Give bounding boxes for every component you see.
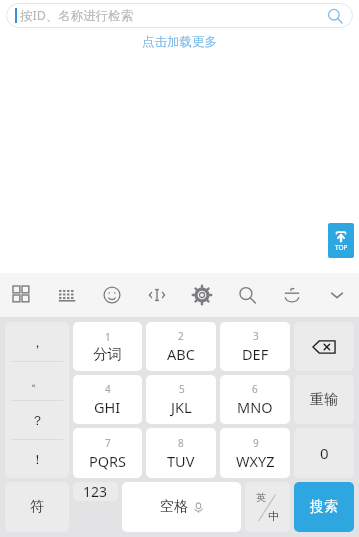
staticText: TUV bbox=[167, 451, 195, 471]
staticText: 7 bbox=[105, 436, 111, 450]
staticText: 重输 bbox=[310, 391, 338, 409]
staticText: 搜索 bbox=[310, 498, 338, 516]
button[interactable]: 3 bbox=[220, 322, 290, 371]
staticText: 123 bbox=[83, 482, 108, 501]
button[interactable]: 4 bbox=[73, 375, 142, 424]
staticText: 分词 bbox=[93, 345, 122, 363]
button[interactable]: Keyboard layouts bbox=[0, 273, 44, 317]
button[interactable]: 符 bbox=[5, 482, 69, 532]
button[interactable]: 123 bbox=[73, 482, 118, 501]
staticText: 空格 bbox=[160, 498, 188, 516]
staticText: 4 bbox=[105, 382, 111, 396]
button[interactable]: 0 bbox=[294, 428, 354, 478]
button[interactable]: Settings bbox=[179, 273, 224, 317]
button[interactable]: Search bbox=[224, 273, 269, 317]
staticText: 9 bbox=[253, 436, 259, 450]
staticText: 8 bbox=[178, 436, 184, 450]
button[interactable]: ， bbox=[5, 322, 69, 361]
button[interactable]: 9 bbox=[220, 428, 290, 478]
staticText: 中 bbox=[268, 509, 279, 523]
staticText: ！ bbox=[31, 451, 44, 467]
staticText: 2 bbox=[178, 329, 184, 343]
staticText: DEF bbox=[242, 344, 269, 364]
staticText: WXYZ bbox=[236, 451, 275, 471]
staticText: ， bbox=[31, 334, 44, 350]
staticText: 3 bbox=[253, 329, 259, 343]
staticText: 符 bbox=[30, 498, 44, 516]
button[interactable]: 2 bbox=[146, 322, 216, 371]
staticText: 英 bbox=[256, 491, 266, 504]
staticText: 5 bbox=[179, 382, 185, 396]
button[interactable]: Collapse keyboard bbox=[314, 273, 359, 317]
staticText: 点击加载更多 bbox=[142, 34, 217, 50]
staticText: ABC bbox=[167, 344, 195, 364]
button[interactable]: 重输 bbox=[294, 375, 354, 424]
staticText: 按ID、名称进行检索 bbox=[20, 7, 134, 24]
button[interactable]: Emoji bbox=[89, 273, 134, 317]
staticText: 。 bbox=[31, 373, 44, 389]
button[interactable]: Delete bbox=[294, 322, 354, 371]
button[interactable]: 点击加载更多 bbox=[0, 31, 359, 53]
staticText: PQRS bbox=[89, 451, 127, 471]
staticText: GHI bbox=[94, 397, 121, 417]
button[interactable]: Theme bbox=[269, 273, 314, 317]
button[interactable]: Text cursor bbox=[134, 273, 179, 317]
button[interactable]: 按ID、名称进行检索 bbox=[6, 3, 353, 28]
staticText: TOP bbox=[335, 243, 348, 252]
button[interactable]: ！ bbox=[5, 440, 69, 478]
button[interactable]: 8 bbox=[146, 428, 216, 478]
staticText: 6 bbox=[252, 382, 258, 396]
staticText: 1 bbox=[105, 330, 111, 344]
button[interactable]: 6 bbox=[220, 375, 290, 424]
staticText: 0 bbox=[320, 443, 329, 463]
button[interactable]: 5 bbox=[146, 375, 216, 424]
button[interactable]: 7 bbox=[73, 428, 142, 478]
button[interactable]: Scroll to top bbox=[328, 223, 354, 258]
button[interactable]: ？ bbox=[5, 401, 69, 439]
staticText: ？ bbox=[31, 412, 44, 428]
button[interactable]: Keyboard bbox=[44, 273, 89, 317]
button[interactable]: 空格 bbox=[122, 482, 241, 532]
staticText: JKL bbox=[171, 397, 192, 417]
button[interactable]: 1 bbox=[73, 322, 142, 371]
staticText: MNO bbox=[237, 397, 273, 417]
button[interactable]: Switch English Chinese bbox=[245, 482, 290, 532]
button[interactable]: 搜索 bbox=[294, 482, 354, 532]
button[interactable]: 。 bbox=[5, 362, 69, 400]
